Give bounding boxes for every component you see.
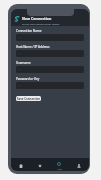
button[interactable]: Saved: [30, 160, 49, 171]
staticText: Username: [16, 61, 31, 65]
staticText: ···: [18, 84, 21, 88]
staticText: Host Name / IP Address: [16, 45, 50, 49]
other: App logo: [14, 16, 20, 22]
staticText: Save Connection: [17, 97, 41, 101]
staticText: ···: [18, 68, 21, 72]
other: New: [57, 162, 61, 166]
button[interactable]: New: [49, 160, 69, 171]
other: Home: [19, 164, 23, 168]
button[interactable]: Profile: [69, 160, 89, 171]
staticText: Set up your remote server details: [22, 22, 60, 25]
other: Profile: [77, 164, 81, 168]
staticText: New Connection: [22, 16, 52, 21]
staticText: Password or Key: [16, 77, 40, 81]
staticText: New: [57, 167, 62, 170]
button[interactable]: Home: [11, 160, 30, 171]
other: Saved: [38, 164, 42, 168]
staticText: ···: [18, 52, 21, 56]
button[interactable]: Save Connection: [16, 96, 41, 101]
staticText: Connection Name: [16, 29, 42, 33]
staticText: ···: [18, 36, 21, 40]
